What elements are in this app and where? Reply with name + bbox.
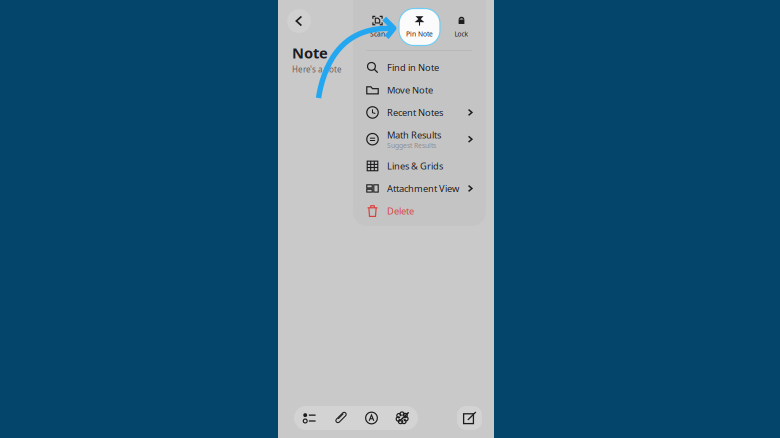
staticText: Move Note bbox=[387, 84, 433, 96]
staticText: Math Results bbox=[387, 129, 441, 141]
staticText: Note bbox=[292, 43, 328, 62]
staticText: Lines & Grids bbox=[387, 160, 443, 172]
button[interactable]: New Note bbox=[457, 406, 482, 430]
button[interactable]: Lines & Grids bbox=[353, 155, 486, 177]
button[interactable]: Checklist bbox=[294, 406, 325, 430]
button[interactable]: Lock bbox=[441, 8, 482, 45]
staticText: Delete bbox=[387, 205, 414, 217]
staticText: Suggest Results bbox=[387, 141, 436, 150]
staticText: Here's a note bbox=[292, 64, 342, 75]
button[interactable]: Markup bbox=[356, 406, 387, 430]
button[interactable]: Back bbox=[287, 9, 311, 33]
button[interactable]: Writing Tools bbox=[387, 406, 418, 430]
button[interactable]: Recent Notes bbox=[353, 101, 486, 124]
staticText: Recent Notes bbox=[387, 106, 443, 119]
staticText: Pin Note bbox=[406, 30, 433, 38]
button[interactable]: Find in Note bbox=[353, 56, 486, 79]
staticText: Scan bbox=[370, 30, 385, 38]
staticText: Lock bbox=[454, 30, 468, 38]
button[interactable]: Attach bbox=[325, 406, 356, 430]
button[interactable]: Move Note bbox=[353, 79, 486, 101]
staticText: Find in Note bbox=[387, 61, 439, 74]
staticText: Attachment View bbox=[387, 182, 459, 195]
button[interactable]: Delete bbox=[353, 200, 486, 222]
button[interactable]: Scan bbox=[357, 8, 398, 45]
button[interactable]: Pin Note bbox=[399, 8, 440, 45]
button[interactable]: Math Results bbox=[353, 124, 486, 155]
button[interactable]: Attachment View bbox=[353, 177, 486, 200]
